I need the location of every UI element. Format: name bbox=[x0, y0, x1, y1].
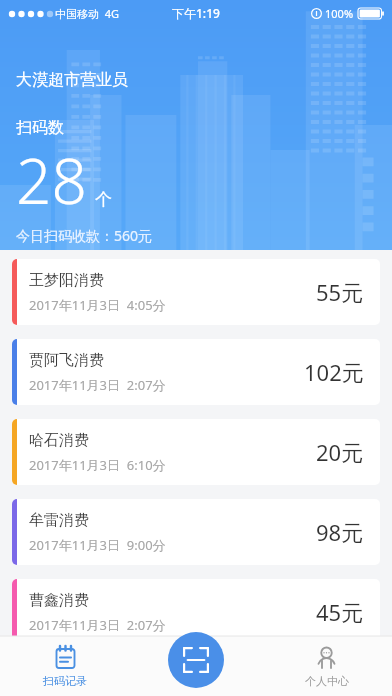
staticText: 100% bbox=[325, 6, 354, 21]
staticText: 今日扫码收款：560元 bbox=[16, 226, 153, 245]
staticText: 98元 bbox=[316, 517, 364, 547]
button[interactable]: 扫码记录 bbox=[0, 636, 130, 696]
staticText: 2017年11月3日 6:10分 bbox=[29, 456, 166, 474]
staticText: 哈石消费 bbox=[29, 431, 89, 450]
staticText: 20元 bbox=[316, 437, 364, 467]
staticText: 贾阿飞消费 bbox=[29, 351, 104, 370]
staticText: 曹鑫消费 bbox=[29, 591, 89, 610]
staticText: 个人中心 bbox=[305, 674, 349, 688]
staticText: 个 bbox=[95, 189, 112, 210]
button[interactable]: 牟雷消费 bbox=[12, 499, 380, 565]
button[interactable]: 个人中心 bbox=[261, 636, 392, 696]
staticText: 扫码数 bbox=[16, 118, 64, 138]
staticText: 2017年11月3日 2:07分 bbox=[29, 376, 166, 394]
button[interactable]: 王梦阳消费 bbox=[12, 259, 380, 325]
staticText: 2017年11月3日 9:00分 bbox=[29, 536, 166, 554]
button[interactable]: 哈石消费 bbox=[12, 419, 380, 485]
staticText: 王梦阳消费 bbox=[29, 271, 104, 290]
staticText: 45元 bbox=[316, 597, 364, 627]
staticText: 中国移动 4G bbox=[55, 6, 120, 21]
staticText: 2017年11月3日 4:05分 bbox=[29, 296, 166, 314]
staticText: 牟雷消费 bbox=[29, 511, 89, 530]
staticText: 102元 bbox=[304, 357, 364, 387]
staticText: 扫码记录 bbox=[43, 674, 87, 688]
button[interactable]: 扫码 bbox=[168, 632, 224, 688]
staticText: 大漠超市营业员 bbox=[16, 70, 128, 90]
button[interactable]: 贾阿飞消费 bbox=[12, 339, 380, 405]
staticText: 55元 bbox=[316, 277, 364, 307]
staticText: 2017年11月3日 2:07分 bbox=[29, 616, 166, 634]
button[interactable]: 曹鑫消费 bbox=[12, 579, 380, 645]
staticText: 下午1:19 bbox=[172, 5, 220, 21]
staticText: 28 bbox=[16, 138, 87, 222]
